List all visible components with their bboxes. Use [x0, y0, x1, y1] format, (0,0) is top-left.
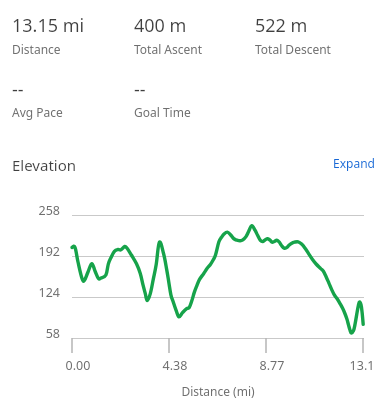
staticText: Elevation: [12, 155, 77, 175]
staticText: 400 m: [134, 13, 187, 38]
staticText: Total Ascent: [134, 41, 203, 57]
staticText: 13.15 mi: [12, 13, 85, 38]
staticText: Distance: [12, 41, 61, 57]
staticText: 522 m: [255, 13, 308, 38]
staticText: 4.38: [155, 357, 195, 374]
staticText: --: [12, 77, 24, 102]
staticText: 124: [0, 284, 60, 301]
staticText: --: [134, 77, 146, 102]
staticText: 13.1: [342, 357, 382, 374]
staticText: 58: [0, 325, 60, 342]
staticText: Total Descent: [255, 41, 331, 57]
staticText: 8.77: [252, 357, 292, 374]
staticText: Avg Pace: [12, 104, 63, 120]
staticText: 0.00: [58, 357, 98, 374]
staticText: Goal Time: [134, 104, 191, 120]
button[interactable]: Elevation: [12, 155, 77, 175]
staticText: 192: [0, 243, 60, 260]
button[interactable]: Expand: [333, 155, 375, 171]
staticText: Expand: [333, 155, 375, 171]
staticText: Distance (mi): [158, 383, 278, 399]
staticText: 258: [0, 202, 60, 219]
